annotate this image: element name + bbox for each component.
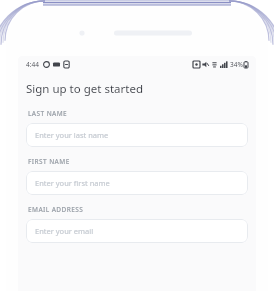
other: Video [53,61,60,68]
staticText: Sign up to get started [26,81,143,97]
staticText: FIRST NAME [28,157,70,166]
staticText: Enter your last name [35,130,109,140]
other: WhatsApp [43,61,50,68]
staticText: Enter your first name [35,178,110,188]
staticText: Enter your email [35,226,94,236]
other: App [63,61,70,68]
staticText: LAST NAME [28,109,68,118]
button[interactable]: Enter your email [26,219,248,243]
staticText: 4:44 [26,60,39,69]
staticText: EMAIL ADDRESS [28,205,84,214]
button[interactable]: Enter your first name [26,171,248,195]
staticText: 34% [230,60,243,69]
button[interactable]: Enter your last name [26,123,248,147]
